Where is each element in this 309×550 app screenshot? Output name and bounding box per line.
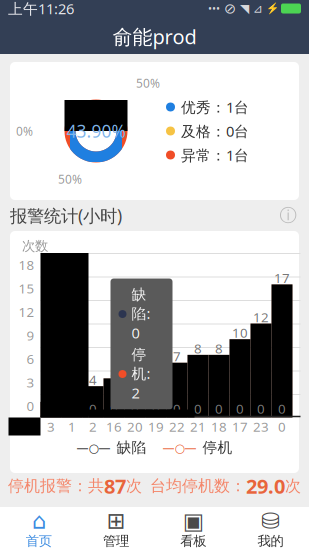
staticText: 3: [47, 418, 55, 435]
staticText: ▣: [183, 508, 204, 534]
staticText: 次数: [22, 238, 48, 254]
staticText: 0%: [16, 123, 33, 139]
staticText: 0: [131, 400, 139, 417]
staticText: 0: [257, 400, 265, 417]
staticText: 缺陷: [116, 438, 146, 456]
staticText: 异常：1台: [181, 145, 249, 165]
staticText: 俞能prod: [112, 23, 196, 50]
staticText: 20: [127, 418, 143, 435]
staticText: ⌂: [32, 508, 46, 534]
staticText: —○—: [76, 439, 110, 455]
button[interactable]: ▣: [154, 508, 232, 550]
button[interactable]: ⊞: [77, 508, 154, 550]
staticText: 0: [215, 400, 223, 417]
staticText: 3: [26, 373, 34, 391]
staticText: 我的: [257, 533, 283, 549]
staticText: 4: [89, 371, 97, 388]
staticText: 15: [18, 279, 34, 297]
staticText: 缺陷: 0: [131, 286, 150, 343]
staticText: ⊘: [224, 0, 236, 17]
staticText: 2: [89, 418, 97, 435]
staticText: 次: [126, 476, 142, 496]
staticText: 5: [131, 363, 139, 381]
staticText: 17: [274, 269, 290, 287]
staticText: 0: [194, 400, 202, 417]
staticText: ⛁: [261, 508, 280, 534]
button[interactable]: ⛁: [232, 508, 309, 550]
staticText: 87: [104, 473, 126, 499]
staticText: 9: [26, 326, 34, 344]
staticText: 50%: [58, 171, 82, 187]
staticText: 0: [236, 400, 244, 417]
staticText: 17: [232, 418, 248, 435]
staticText: 6: [26, 350, 34, 368]
staticText: 22: [169, 418, 185, 435]
staticText: 0: [110, 400, 118, 417]
staticText: 0: [173, 400, 181, 417]
staticText: 及格：0台: [181, 121, 249, 141]
staticText: 停机: 2: [131, 345, 150, 402]
staticText: 18: [18, 256, 34, 274]
staticText: 管理: [103, 533, 129, 549]
staticText: 7: [173, 347, 181, 365]
staticText: ⊞: [106, 508, 125, 534]
staticText: 报警统计(小时): [10, 204, 122, 227]
staticText: 0: [278, 400, 286, 417]
staticText: 12: [253, 308, 269, 326]
staticText: 停机: [202, 438, 232, 456]
staticText: 5: [110, 363, 118, 381]
staticText: 19: [148, 418, 164, 435]
staticText: 上午11:26: [8, 0, 74, 18]
staticText: 看板: [180, 533, 206, 549]
staticText: 首页: [26, 533, 52, 549]
staticText: 优秀：1台: [181, 97, 249, 117]
staticText: ◥: [240, 2, 249, 15]
staticText: ⊿: [253, 2, 263, 15]
staticText: 29.0: [246, 473, 285, 499]
staticText: 停机报警：共: [8, 476, 104, 496]
staticText: ⚡: [266, 2, 279, 15]
staticText: 50%: [136, 75, 160, 91]
staticText: 16: [106, 418, 122, 435]
staticText: 18: [211, 418, 227, 435]
staticText: 0: [152, 400, 160, 417]
staticText: 1: [68, 418, 76, 435]
staticText: 43.90%: [66, 119, 125, 142]
staticText: •••: [208, 1, 220, 16]
staticText: —○—: [162, 439, 196, 455]
staticText: 0: [26, 397, 34, 415]
button[interactable]: 说明: [277, 204, 299, 226]
staticText: 次: [285, 476, 301, 496]
staticText: 0: [89, 400, 97, 417]
staticText: ⓘ: [279, 205, 296, 226]
staticText: 0: [278, 418, 286, 435]
staticText: 10: [232, 324, 248, 341]
staticText: 23: [253, 418, 269, 435]
staticText: 12: [18, 303, 34, 321]
staticText: 8: [215, 339, 223, 357]
staticText: 21: [190, 418, 206, 435]
button[interactable]: ⌂: [0, 508, 77, 550]
staticText: 台均停机数：: [150, 476, 246, 496]
staticText: 8: [194, 339, 202, 357]
